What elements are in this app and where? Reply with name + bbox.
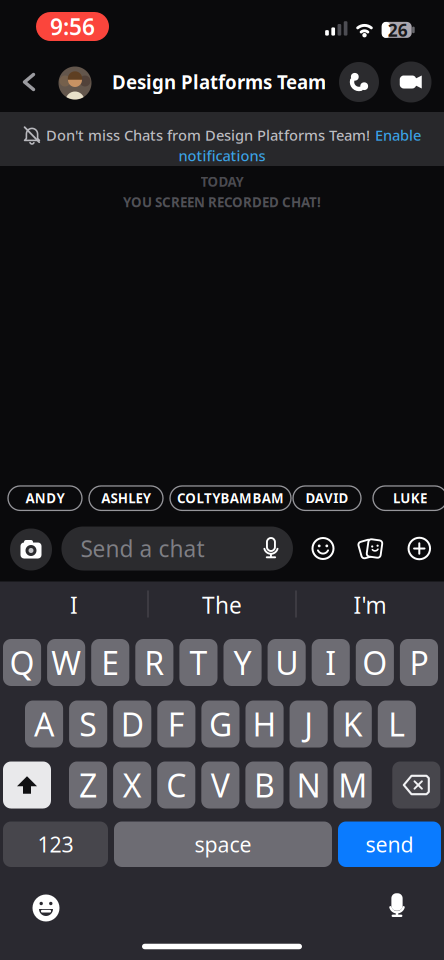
button[interactable]: send <box>338 821 441 867</box>
button[interactable]: I'm <box>300 585 440 625</box>
staticText: notifications <box>178 146 265 165</box>
button[interactable]: DAVID <box>293 486 361 510</box>
staticText: G <box>209 703 232 745</box>
staticText: P <box>409 641 428 684</box>
button[interactable]: Group profile <box>58 66 91 99</box>
staticText: Design Platforms Team <box>112 70 326 94</box>
button[interactable]: 123 <box>3 821 108 867</box>
button[interactable]: I <box>4 585 144 625</box>
button[interactable]: F <box>157 700 195 747</box>
button[interactable]: More <box>407 536 431 560</box>
button[interactable]: X <box>113 761 151 808</box>
button[interactable]: COLTYBAMBAM <box>170 486 291 510</box>
staticText: Enable <box>375 125 421 145</box>
button[interactable]: L <box>378 700 416 747</box>
button[interactable]: Send a chat <box>61 526 293 570</box>
button[interactable]: K <box>334 700 372 747</box>
button[interactable]: O <box>356 639 394 686</box>
button[interactable]: D <box>113 700 151 747</box>
button[interactable]: A <box>25 700 63 747</box>
button[interactable]: H <box>245 700 284 747</box>
staticText: I'm <box>353 590 386 620</box>
button[interactable]: U <box>268 639 306 686</box>
button[interactable]: Y <box>223 639 262 686</box>
button[interactable]: B <box>245 761 283 808</box>
button[interactable]: Camera <box>10 528 52 570</box>
button[interactable]: S <box>69 700 107 747</box>
staticText: R <box>144 641 164 684</box>
button[interactable]: W <box>47 639 85 686</box>
staticText: H <box>253 703 277 745</box>
staticText: ANDY <box>26 489 64 507</box>
staticText: send <box>365 830 413 858</box>
button[interactable]: Delete <box>392 761 440 808</box>
staticText: space <box>194 830 251 858</box>
button[interactable]: Stickers <box>311 536 335 560</box>
staticText: YOU SCREEN RECORDED CHAT! <box>123 193 321 211</box>
staticText: Z <box>79 764 97 806</box>
button[interactable]: R <box>135 639 173 686</box>
staticText: B <box>254 764 275 806</box>
button[interactable]: M <box>334 761 372 808</box>
staticText: Send a chat <box>80 533 204 563</box>
staticText: U <box>275 641 298 684</box>
staticText: J <box>304 703 313 745</box>
staticText: W <box>51 641 81 684</box>
staticText: Y <box>234 641 252 684</box>
button[interactable]: LUKE <box>373 486 444 510</box>
button[interactable]: ANDY <box>8 486 82 510</box>
button[interactable]: Memories <box>358 536 384 560</box>
staticText: E <box>101 641 119 684</box>
staticText: ASHLEY <box>101 489 151 507</box>
button[interactable]: Back <box>12 62 46 102</box>
button[interactable]: Dictation <box>383 893 411 921</box>
staticText: 26 <box>388 18 408 41</box>
staticText: The <box>202 590 242 620</box>
button[interactable]: Don't miss Chats from Design Platforms T… <box>0 112 444 166</box>
button[interactable]: C <box>157 761 195 808</box>
staticText: O <box>362 641 387 684</box>
staticText: 123 <box>37 830 73 858</box>
staticText: Q <box>10 641 35 684</box>
staticText: F <box>168 703 185 745</box>
button[interactable]: Design Platforms Team <box>112 62 372 102</box>
staticText: C <box>166 764 186 806</box>
button[interactable]: Z <box>69 761 107 808</box>
staticText: X <box>123 764 142 806</box>
button[interactable]: Screen recording <box>36 12 109 41</box>
button[interactable]: G <box>201 700 239 747</box>
button[interactable]: V <box>201 761 239 808</box>
staticText: T <box>189 641 207 684</box>
staticText: K <box>343 703 363 745</box>
button[interactable]: Video call <box>390 61 431 102</box>
button[interactable]: J <box>290 700 328 747</box>
button[interactable]: space <box>114 821 332 867</box>
staticText: LUKE <box>393 489 427 507</box>
staticText: L <box>388 703 405 745</box>
staticText: S <box>79 703 97 745</box>
button[interactable]: Shift <box>3 761 51 808</box>
staticText: DAVID <box>305 489 349 507</box>
staticText: 9:56 <box>50 11 95 41</box>
staticText: V <box>211 764 230 806</box>
staticText: M <box>338 764 367 806</box>
button[interactable]: E <box>91 639 129 686</box>
button[interactable]: ASHLEY <box>89 486 163 510</box>
button[interactable]: T <box>179 639 217 686</box>
staticText: I <box>70 590 78 620</box>
staticText: N <box>297 764 321 806</box>
staticText: TODAY <box>200 173 243 190</box>
button[interactable]: P <box>400 639 438 686</box>
staticText: Don't miss Chats from Design Platforms T… <box>46 125 370 145</box>
button[interactable]: Call <box>339 62 379 102</box>
button[interactable]: I <box>312 639 350 686</box>
button[interactable]: The <box>152 585 292 625</box>
staticText: D <box>121 703 144 745</box>
staticText: A <box>34 703 54 745</box>
button[interactable]: N <box>289 761 328 808</box>
button[interactable]: Emoji <box>32 894 60 922</box>
staticText: I <box>325 641 336 684</box>
staticText: COLTYBAMBAM <box>177 489 284 507</box>
button[interactable]: Q <box>3 639 41 686</box>
